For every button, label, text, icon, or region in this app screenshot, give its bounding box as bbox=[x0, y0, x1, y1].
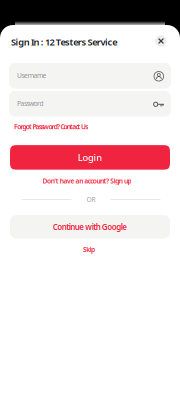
button[interactable]: Close bbox=[152, 32, 170, 50]
button[interactable]: Skip bbox=[83, 245, 95, 254]
staticText: Don't have an account? Sign up bbox=[42, 176, 131, 185]
staticText: Continue with Google bbox=[53, 221, 127, 232]
staticText: Skip bbox=[83, 245, 95, 254]
staticText: OR bbox=[86, 195, 95, 204]
staticText: Sign In : 12 Testers Service bbox=[11, 36, 117, 48]
button[interactable]: Login bbox=[10, 145, 170, 170]
staticText: Forgot Password? Contact Us bbox=[14, 122, 88, 131]
staticText: Login bbox=[78, 151, 102, 164]
button[interactable]: Continue with Google bbox=[10, 215, 170, 239]
button[interactable]: Forgot Password? Contact Us bbox=[14, 122, 94, 132]
staticText: Username bbox=[17, 71, 46, 80]
button[interactable]: Don't have an account? Sign up bbox=[42, 176, 131, 185]
staticText: Password bbox=[17, 99, 43, 108]
